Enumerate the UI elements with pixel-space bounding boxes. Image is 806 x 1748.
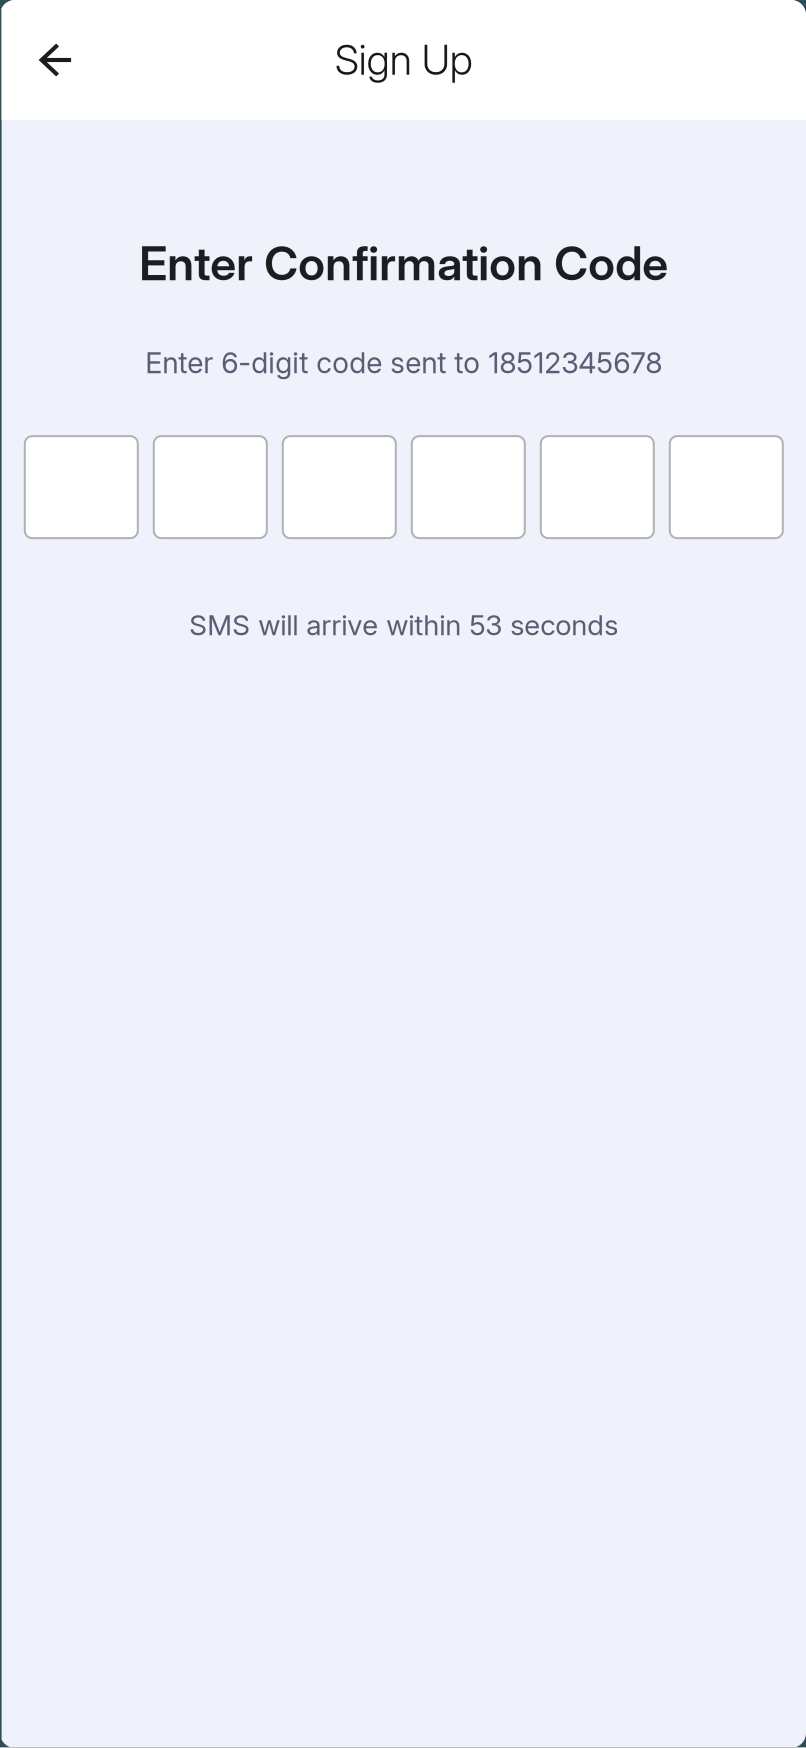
staticText: Enter 6-digit code sent to 18512345678	[145, 345, 662, 380]
staticText: Sign Up	[335, 35, 473, 85]
button[interactable]: Confirmation code digit 1	[24, 435, 139, 539]
staticText: Enter Confirmation Code	[139, 235, 668, 291]
button[interactable]: Confirmation code digit 5	[540, 435, 655, 539]
button[interactable]: Confirmation code digit 6	[669, 435, 784, 539]
button[interactable]: Confirmation code digit 4	[411, 435, 526, 539]
button[interactable]: Confirmation code digit 3	[282, 435, 397, 539]
button[interactable]: Confirmation code digit 2	[153, 435, 268, 539]
staticText: SMS will arrive within 53 seconds	[189, 608, 618, 642]
button[interactable]: Back	[24, 28, 88, 92]
